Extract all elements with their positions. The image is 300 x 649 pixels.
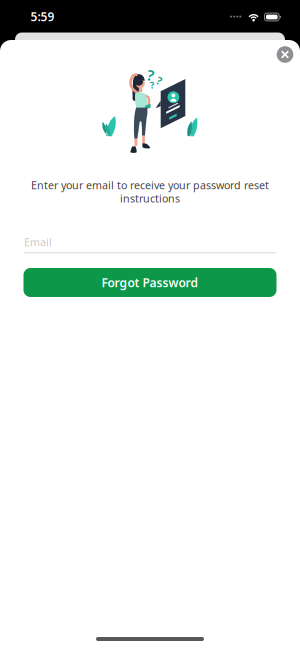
staticText: Enter your email to receive your passwor… <box>31 178 269 192</box>
staticText: 5:59 <box>30 8 54 24</box>
staticText: instructions <box>120 191 180 205</box>
staticText: Email <box>24 235 52 249</box>
staticText: ? <box>147 65 154 85</box>
staticText: Forgot Password <box>101 274 198 290</box>
staticText: ? <box>150 79 154 91</box>
button[interactable]: Forgot Password <box>23 268 276 297</box>
button[interactable]: Close <box>277 46 293 63</box>
button[interactable]: Email <box>24 234 276 250</box>
staticText: ? <box>157 73 162 87</box>
